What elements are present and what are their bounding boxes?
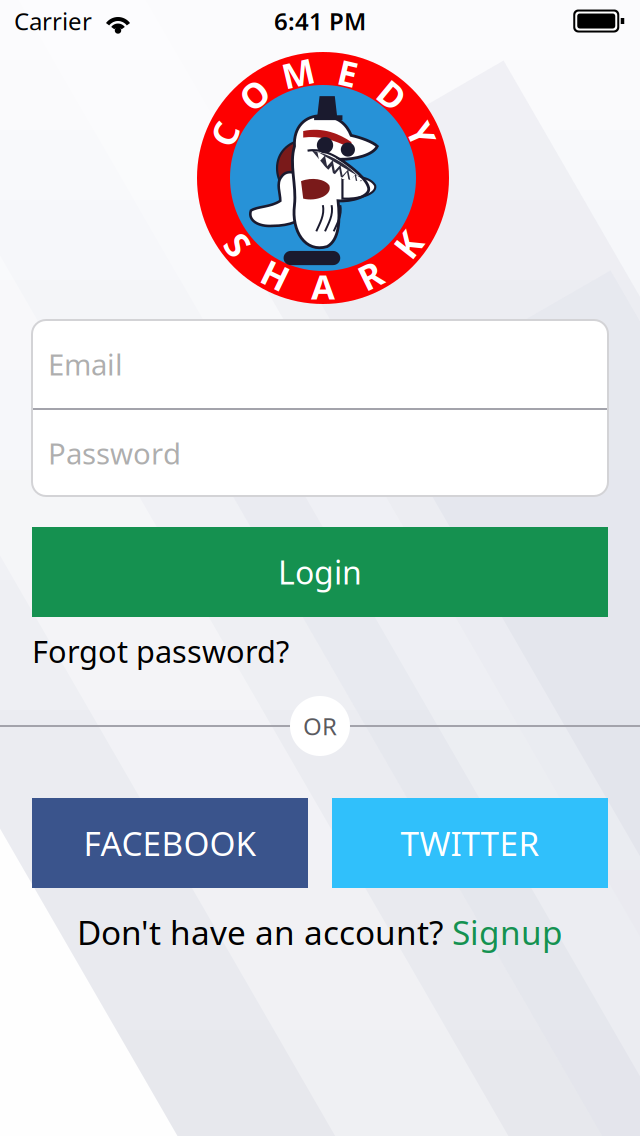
staticText: M (282, 50, 315, 96)
button[interactable]: Password (32, 433, 608, 472)
staticText: Forgot password? (32, 631, 289, 671)
staticText: S (228, 221, 247, 267)
staticText: Don't have an account? (77, 910, 452, 954)
staticText: C (213, 111, 235, 157)
staticText: 6:41 PM (274, 5, 366, 37)
staticText: R (359, 252, 382, 298)
staticText: A (311, 263, 335, 309)
staticText: O (241, 72, 268, 118)
staticText: Y (411, 111, 433, 157)
staticText: H (262, 252, 289, 298)
staticText: OR (303, 710, 337, 742)
button[interactable]: Login (32, 527, 608, 617)
staticText: Signup (452, 910, 563, 954)
staticText: Carrier (14, 5, 92, 37)
staticText: Password (48, 433, 181, 472)
staticText: FACEBOOK (83, 821, 256, 865)
button[interactable]: Email (32, 344, 608, 383)
staticText: Email (48, 344, 123, 383)
button[interactable]: Signup (452, 910, 563, 954)
button[interactable]: Forgot password? (32, 625, 289, 677)
staticText: D (379, 72, 404, 118)
button[interactable]: FACEBOOK (32, 798, 308, 888)
staticText: K (397, 221, 420, 267)
staticText: Login (278, 551, 362, 593)
staticText: TWITTER (400, 821, 539, 865)
button[interactable]: TWITTER (332, 798, 608, 888)
staticText: E (338, 50, 357, 96)
